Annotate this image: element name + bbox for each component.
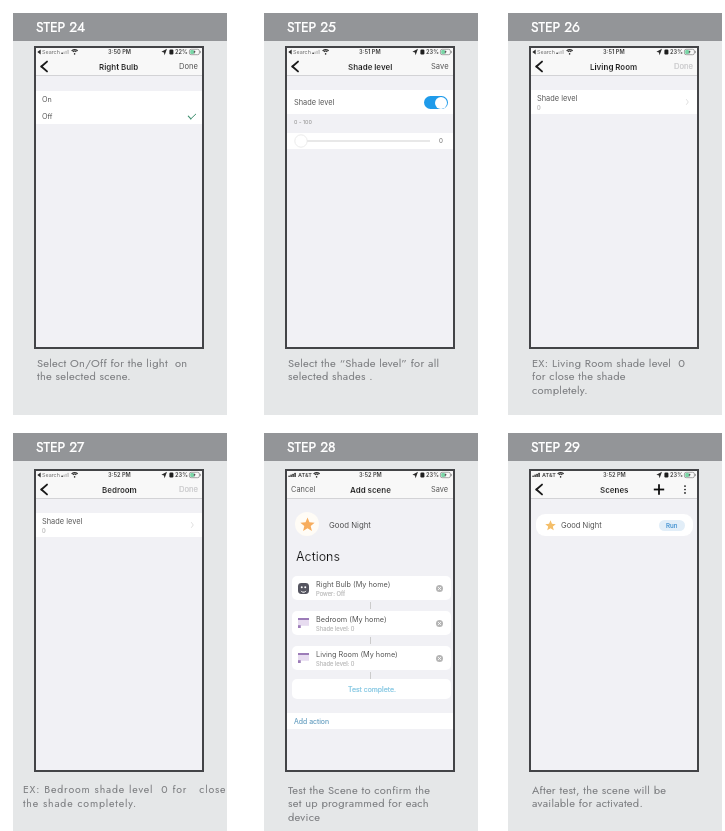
staticText: AT&T [298,472,312,479]
staticText: Right Bulb (My home) [316,580,391,589]
staticText: Shade level [294,98,335,107]
button[interactable]: Remove action [436,585,443,592]
staticText: Shade level [42,517,83,526]
staticText: Bedroom (My home) [316,615,387,624]
staticText: 23% [175,472,188,479]
staticText: STEP 29 [531,437,581,457]
staticText: EX: Bedroom shade level 0 for close the … [23,782,227,811]
staticText: Search [42,472,60,479]
staticText: Right Bulb [99,62,139,72]
staticText: Select On/Off for the light on the selec… [37,355,188,384]
button[interactable]: Cancel [286,485,321,494]
staticText: 0 [439,137,443,145]
button[interactable]: Right Bulb (My home) [292,576,451,600]
staticText: 23% [670,49,683,56]
button[interactable]: Shade level [35,513,203,537]
staticText: 22% [175,49,188,56]
staticText: Bedroom [102,485,137,495]
staticText: 23% [670,472,683,479]
button[interactable]: Remove action [436,620,443,627]
staticText: Shade level [348,62,393,72]
button[interactable]: Done [174,485,203,494]
staticText: STEP 26 [531,17,581,37]
staticText: 23% [426,49,439,56]
staticText: Good Night [329,520,371,529]
staticText: STEP 24 [36,17,86,37]
button[interactable]: Off [35,108,203,125]
staticText: 0 [42,527,46,534]
button[interactable]: More options [679,480,691,499]
staticText: Test the Scene to confirm the set up pro… [288,782,431,825]
staticText: AT&T [542,472,556,479]
staticText: 0 - 100 [294,119,312,126]
staticText: Off [42,112,53,121]
staticText: Test complete. [348,685,396,693]
staticText: 3:52 PM [108,472,131,479]
staticText: EX: Living Room shade level 0 for close … [532,355,686,398]
staticText: On [42,95,52,104]
button[interactable]: Bedroom (My home) [292,611,451,635]
staticText: Select the “Shade level” for all selecte… [288,355,440,384]
button[interactable]: Add action [286,713,454,729]
staticText: Search [293,49,311,56]
button[interactable]: Good Night [536,514,693,536]
staticText: 3:51 PM [603,49,625,56]
button[interactable]: Done [174,62,203,71]
button[interactable]: Shade level [286,90,454,114]
button[interactable]: Living Room (My home) [292,646,451,670]
staticText: 3:51 PM [359,49,381,56]
staticText: Search [537,49,555,56]
staticText: Search [42,49,60,56]
staticText: Add scene [350,485,391,495]
staticText: STEP 28 [287,437,336,457]
staticText: Shade level: 0 [316,625,355,632]
button[interactable]: Back [530,480,546,499]
staticText: Shade level [537,94,578,103]
staticText: Actions [296,549,340,564]
staticText: Living Room (My home) [316,650,398,659]
staticText: Good Night [561,521,602,530]
staticText: 3:52 PM [359,472,382,479]
staticText: 3:52 PM [603,472,626,479]
staticText: Run [666,522,678,530]
button[interactable]: Back [35,57,51,76]
staticText: 0 [537,104,541,111]
staticText: STEP 25 [287,17,336,37]
button[interactable]: Shade level [530,90,698,114]
staticText: After test, the scene will be available … [532,782,667,811]
staticText: Shade level: 0 [316,660,355,667]
button[interactable]: Remove action [436,655,443,662]
staticText: Scenes [600,485,629,495]
button[interactable]: Back [286,57,302,76]
button[interactable]: Save [426,62,454,71]
button[interactable]: On [35,91,203,108]
staticText: 3:50 PM [108,49,131,56]
button[interactable]: Test complete. [292,679,451,699]
staticText: Add action [294,717,330,725]
button[interactable]: Add scene [651,480,667,499]
staticText: STEP 27 [36,437,85,457]
staticText: Power: Off [316,590,346,597]
button[interactable]: Save [426,485,454,494]
button[interactable]: Back [35,480,51,499]
staticText: Living Room [590,62,638,72]
button[interactable]: Run [659,520,685,531]
button[interactable]: Back [530,57,546,76]
button[interactable]: Done [669,62,698,71]
button[interactable] [424,96,448,109]
staticText: 23% [426,472,439,479]
